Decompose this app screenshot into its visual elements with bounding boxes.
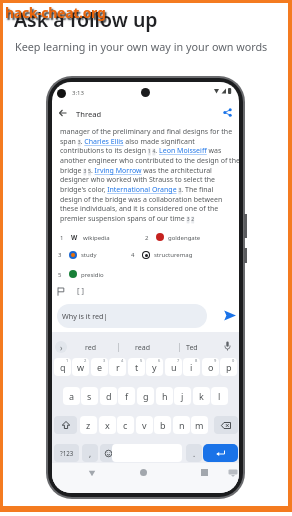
button[interactable]: j [174, 387, 191, 405]
button[interactable] [57, 287, 65, 296]
staticText: contributions to its design 1 4. Leon Mo… [60, 146, 222, 156]
staticText: study [81, 251, 97, 259]
staticText: u [171, 361, 177, 373]
staticText: 1 [66, 358, 69, 363]
staticText: a [69, 390, 75, 402]
staticText: hack-cheat.org [5, 3, 106, 22]
staticText: structuremag [154, 251, 193, 259]
staticText: [ ] [77, 285, 84, 295]
button[interactable]: k [193, 387, 210, 405]
button[interactable]: p [220, 358, 237, 376]
button[interactable]: l [211, 387, 228, 405]
staticText: . [193, 448, 196, 459]
staticText: span 3. Charles Ellis also made signific… [60, 137, 195, 147]
staticText: 5 [140, 358, 143, 363]
staticText: 3 [58, 251, 62, 259]
button[interactable]: h [156, 387, 173, 405]
staticText: manager of the preliminary and final des… [60, 127, 233, 137]
staticText: read [135, 343, 150, 353]
button[interactable]: g [137, 387, 154, 405]
button[interactable] [223, 309, 237, 322]
button[interactable]: s [81, 387, 98, 405]
staticText: 4 [131, 251, 135, 259]
button[interactable] [100, 444, 116, 462]
staticText: c [123, 419, 128, 431]
staticText: presidio [81, 271, 104, 279]
staticText: design of the bridge was a collaboration… [60, 195, 223, 205]
staticText: , [89, 448, 92, 459]
button[interactable]: , [82, 444, 98, 462]
staticText: z [86, 419, 91, 431]
button[interactable]: c [117, 416, 134, 434]
staticText: w [77, 361, 85, 373]
button[interactable] [223, 108, 232, 117]
staticText: bridge's color, International Orange 3. … [60, 185, 214, 195]
button[interactable]: d [100, 387, 117, 405]
staticText: n [179, 419, 185, 431]
staticText: 0 [232, 358, 235, 363]
button[interactable]: z [80, 416, 97, 434]
button[interactable]: v [136, 416, 153, 434]
staticText: f [125, 390, 129, 402]
button[interactable]: e [91, 358, 108, 376]
button[interactable] [54, 416, 77, 434]
button[interactable]: o [202, 358, 219, 376]
staticText: g [143, 390, 149, 402]
staticText: these individuals, and it is considered … [60, 204, 219, 214]
button[interactable] [57, 304, 207, 328]
button[interactable]: y [146, 358, 163, 376]
staticText: Thread [76, 109, 102, 119]
staticText: d [106, 390, 112, 402]
staticText: s [87, 390, 92, 402]
button[interactable]: q [54, 358, 71, 376]
button[interactable]: n [173, 416, 190, 434]
staticText: 5 [58, 271, 62, 279]
button[interactable]: b [154, 416, 171, 434]
button[interactable]: u [165, 358, 182, 376]
button[interactable]: . [186, 444, 202, 462]
staticText: q [60, 361, 66, 373]
staticText: 4 [121, 358, 124, 363]
staticText: designer who worked with Strauss to sele… [60, 175, 216, 185]
button[interactable] [203, 444, 238, 462]
staticText: h [162, 390, 168, 402]
staticText: ?123 [60, 449, 74, 457]
staticText: 7 [177, 358, 180, 363]
staticText: goldengate [168, 234, 201, 242]
staticText: p [226, 361, 232, 373]
button[interactable]: ?123 [54, 444, 79, 462]
staticText: v [142, 419, 147, 431]
button[interactable]: f [118, 387, 135, 405]
staticText: › [60, 342, 63, 353]
button[interactable] [140, 469, 147, 476]
staticText: i [190, 361, 193, 373]
button[interactable] [88, 470, 96, 477]
staticText: bridge 3 5. Irving Morrow was the archit… [60, 166, 212, 176]
button[interactable]: w [72, 358, 89, 376]
staticText: y [152, 361, 157, 373]
button[interactable]: x [99, 416, 116, 434]
staticText: k [199, 390, 204, 402]
staticText: l [218, 390, 221, 402]
staticText: Why is it red| [62, 311, 108, 321]
button[interactable]: r [109, 358, 126, 376]
button[interactable]: a [63, 387, 80, 405]
staticText: wikipedia [83, 234, 110, 242]
staticText: r [116, 361, 120, 373]
staticText: m [195, 419, 204, 431]
staticText: 8 [195, 358, 198, 363]
staticText: 1 [60, 234, 64, 242]
button[interactable]: m [191, 416, 208, 434]
staticText: 3 [103, 358, 106, 363]
button[interactable]: t [128, 358, 145, 376]
staticText: t [135, 361, 139, 373]
staticText: b [160, 419, 166, 431]
staticText: Keep learning in your own way in your ow… [15, 39, 268, 54]
staticText: Ask a follow up [14, 6, 158, 33]
button[interactable]: i [183, 358, 200, 376]
button[interactable] [214, 416, 238, 434]
staticText: x [105, 419, 110, 431]
staticText: 3:13 [72, 89, 84, 97]
